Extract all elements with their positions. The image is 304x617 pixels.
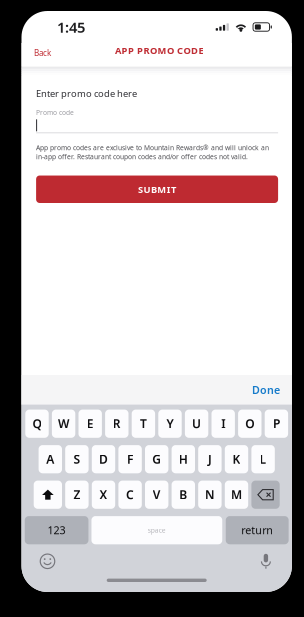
button[interactable]: P [265, 410, 288, 438]
button[interactable]: Shift [34, 481, 62, 509]
staticText: Z [73, 487, 80, 503]
staticText: L [260, 451, 267, 467]
staticText: X [99, 487, 107, 503]
staticText: App promo codes are exclusive to Mountai… [36, 143, 269, 161]
staticText: SUBMIT [138, 183, 176, 195]
button[interactable]: O [238, 410, 261, 438]
button[interactable]: return [226, 516, 289, 544]
button[interactable]: 123 [25, 516, 88, 544]
button[interactable]: S [65, 445, 89, 473]
staticText: E [87, 416, 94, 432]
button[interactable]: SUBMIT [36, 175, 278, 203]
staticText: W [58, 416, 69, 432]
button[interactable]: N [198, 481, 222, 509]
staticText: 123 [48, 523, 66, 537]
staticText: Y [166, 416, 173, 432]
button[interactable]: space [91, 516, 222, 544]
staticText: V [153, 487, 161, 503]
button[interactable]: U [185, 410, 208, 438]
button[interactable]: F [118, 445, 142, 473]
button[interactable]: X [92, 481, 115, 509]
button[interactable]: K [225, 445, 248, 473]
button[interactable]: Y [158, 410, 182, 438]
button[interactable]: W [52, 410, 75, 438]
staticText: A [46, 451, 54, 467]
staticText: Enter promo code here [36, 87, 137, 99]
button[interactable]: E [78, 410, 102, 438]
staticText: M [231, 487, 242, 503]
button[interactable]: D [92, 445, 115, 473]
staticText: D [99, 451, 108, 467]
staticText: APP PROMO CODE [115, 44, 203, 57]
button[interactable]: T [132, 410, 155, 438]
button[interactable]: M [225, 481, 248, 509]
staticText: P [273, 416, 280, 432]
button[interactable]: Emoji keyboard [35, 549, 59, 573]
staticText: J [208, 451, 212, 467]
staticText: return [241, 523, 273, 537]
button[interactable]: G [145, 445, 168, 473]
button[interactable]: A [39, 445, 62, 473]
button[interactable]: C [118, 481, 142, 509]
button[interactable]: J [198, 445, 222, 473]
staticText: N [205, 487, 215, 503]
button[interactable]: L [251, 445, 275, 473]
button[interactable]: I [211, 410, 235, 438]
staticText: C [126, 487, 134, 503]
staticText: O [245, 416, 254, 432]
staticText: U [192, 416, 201, 432]
staticText: S [73, 451, 80, 467]
staticText: Promo code [36, 108, 74, 117]
button[interactable]: Z [65, 481, 89, 509]
button[interactable]: Done [252, 375, 292, 405]
staticText: G [152, 451, 161, 467]
staticText: 1:45 [57, 17, 85, 37]
button[interactable]: H [172, 445, 195, 473]
staticText: R [113, 416, 121, 432]
staticText: H [179, 451, 188, 467]
button[interactable]: V [145, 481, 168, 509]
button[interactable]: R [105, 410, 128, 438]
staticText: Done [252, 383, 280, 397]
staticText: F [127, 451, 133, 467]
staticText: I [221, 416, 225, 432]
staticText: K [232, 451, 240, 467]
staticText: space [148, 526, 166, 535]
button[interactable]: Back [21, 46, 63, 60]
button[interactable]: Q [25, 410, 49, 438]
button[interactable]: Delete [251, 481, 280, 509]
staticText: Back [34, 48, 51, 58]
button[interactable]: B [172, 481, 195, 509]
staticText: B [179, 487, 187, 503]
staticText: T [140, 416, 147, 432]
button[interactable]: Dictation [254, 549, 278, 573]
staticText: Q [32, 416, 41, 432]
